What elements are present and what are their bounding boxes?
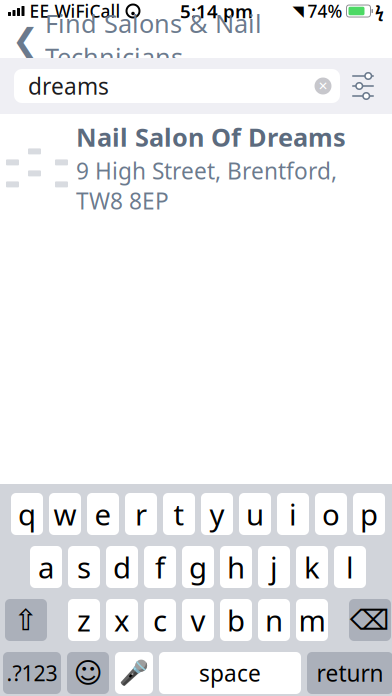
button[interactable]: d (106, 546, 138, 588)
staticText: c (153, 600, 167, 639)
button[interactable]: Nail Salon Of Dreams (0, 114, 392, 222)
staticText: b (227, 600, 245, 639)
staticText: ☺ (73, 657, 102, 689)
staticText: 🎤 (119, 659, 149, 687)
button[interactable]: h (220, 546, 252, 588)
button[interactable]: q (11, 493, 43, 535)
button[interactable]: t (163, 493, 195, 535)
staticText: t (173, 494, 184, 533)
staticText: f (155, 547, 165, 586)
staticText: j (270, 547, 278, 586)
staticText: Find Salons & Nail Technicians (45, 6, 262, 74)
staticText: q (18, 494, 36, 533)
staticText: 5:14 pm (180, 0, 253, 23)
button[interactable]: b (220, 599, 252, 641)
button[interactable]: x (106, 599, 138, 641)
button[interactable]: e (87, 493, 119, 535)
staticText: .?123 (6, 659, 57, 687)
staticText: ❮ (12, 22, 39, 58)
button[interactable]: y (201, 493, 233, 535)
staticText: l (346, 547, 354, 586)
button[interactable]: r (125, 493, 157, 535)
staticText: Nail Salon Of Dreams (76, 120, 346, 154)
button[interactable]: m (296, 599, 328, 641)
button[interactable]: ❮ (0, 0, 262, 80)
staticText: z (77, 600, 91, 639)
staticText: space (199, 658, 261, 688)
button[interactable]: j (258, 546, 290, 588)
button[interactable]: n (258, 599, 290, 641)
staticText: k (304, 547, 320, 586)
staticText: o (322, 494, 340, 533)
staticText: m (298, 600, 325, 639)
button[interactable]: Clear text (310, 71, 336, 101)
staticText: ⇧ (13, 603, 38, 637)
staticText: dreams (28, 71, 109, 101)
button[interactable]: p (353, 493, 385, 535)
button[interactable]: f (144, 546, 176, 588)
staticText: EE WiFiCall (29, 0, 120, 22)
staticText: ϟ (375, 0, 384, 22)
staticText: e (94, 494, 111, 533)
staticText: 9 High Street, Brentford, TW8 8EP (76, 156, 337, 216)
staticText: w (53, 494, 76, 533)
button[interactable]: k (296, 546, 328, 588)
staticText: ⌫ (350, 604, 390, 636)
button[interactable]: Delete (349, 599, 391, 641)
staticText: ✕ (318, 79, 328, 93)
staticText: return (316, 658, 383, 688)
button[interactable]: s (68, 546, 100, 588)
staticText: d (113, 547, 131, 586)
button[interactable]: return (307, 652, 392, 694)
button[interactable]: space (159, 652, 301, 694)
button[interactable]: i (277, 493, 309, 535)
staticText: n (265, 600, 283, 639)
staticText: h (227, 547, 245, 586)
button[interactable]: l (334, 546, 366, 588)
staticText: p (360, 494, 378, 533)
staticText: g (189, 547, 207, 586)
staticText: a (38, 547, 54, 586)
staticText: u (246, 494, 264, 533)
button[interactable]: v (182, 599, 214, 641)
button[interactable]: z (68, 599, 100, 641)
button[interactable]: u (239, 493, 271, 535)
staticText: 74% (307, 0, 342, 22)
staticText: y (209, 494, 224, 533)
staticText: v (190, 600, 205, 639)
button[interactable]: o (315, 493, 347, 535)
button[interactable]: Dictate (115, 652, 153, 694)
staticText: x (114, 600, 130, 639)
button[interactable]: a (30, 546, 62, 588)
button[interactable]: w (49, 493, 81, 535)
button[interactable]: .?123 (3, 652, 61, 694)
staticText: s (77, 547, 91, 586)
button[interactable]: c (144, 599, 176, 641)
staticText: ◥ (292, 3, 303, 19)
button[interactable]: Emoji (67, 652, 109, 694)
button[interactable]: g (182, 546, 214, 588)
staticText: r (135, 494, 147, 533)
button[interactable]: Filters (340, 64, 386, 108)
button[interactable]: Shift (5, 599, 47, 641)
staticText: i (289, 494, 297, 533)
